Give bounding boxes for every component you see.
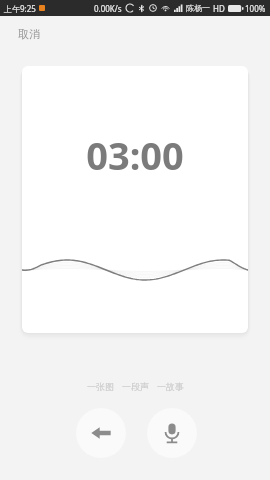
staticText: 取消 — [18, 27, 40, 41]
staticText: 一段声 — [122, 381, 149, 392]
staticText: 03:00 — [86, 129, 184, 181]
staticText: 0.00K/s — [94, 3, 122, 14]
staticText: 一故事 — [157, 381, 184, 392]
staticText: 陈杨一 — [186, 3, 210, 13]
staticText: 上午9:25 — [4, 3, 36, 14]
staticText: 一张图 — [87, 381, 114, 392]
staticText: HD — [213, 3, 225, 14]
button[interactable]: 取消 — [14, 24, 44, 44]
button[interactable]: Record — [147, 408, 197, 458]
staticText: 100% — [245, 3, 266, 14]
button[interactable]: Back — [76, 408, 126, 458]
